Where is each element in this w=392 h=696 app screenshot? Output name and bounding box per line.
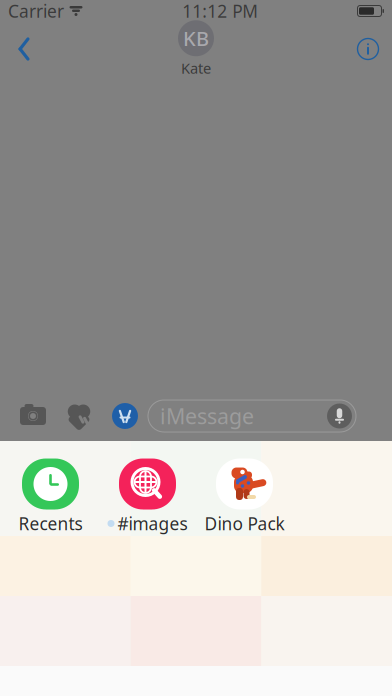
staticText: iMessage xyxy=(160,402,254,430)
staticText: #images xyxy=(117,512,187,535)
staticText: 11:12 PM xyxy=(182,0,258,22)
button[interactable]: Digital Touch xyxy=(56,394,102,438)
button[interactable]: Details xyxy=(346,27,390,71)
button[interactable]: Recents xyxy=(2,455,99,535)
button[interactable]: #images xyxy=(99,455,196,535)
staticText: Recents xyxy=(18,512,82,535)
staticText: Kate xyxy=(181,58,211,78)
button[interactable]: iMessage Apps xyxy=(102,394,148,438)
button[interactable]: Dino Pack xyxy=(196,455,293,535)
staticText: KB xyxy=(183,25,209,52)
button[interactable]: Back xyxy=(2,27,46,71)
staticText: Dino Pack xyxy=(204,512,284,535)
button[interactable]: Camera xyxy=(10,394,56,438)
button[interactable]: iMessage xyxy=(148,399,356,433)
staticText: Carrier xyxy=(8,0,64,22)
